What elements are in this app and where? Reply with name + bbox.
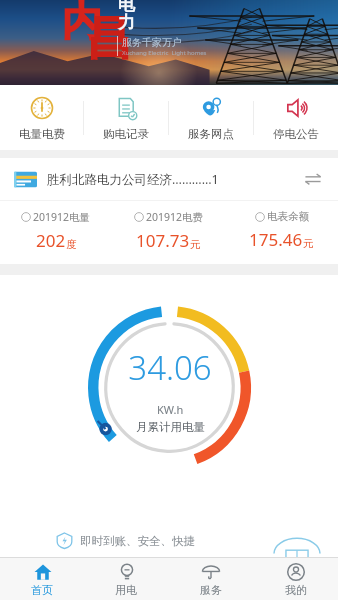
staticText: 内 bbox=[62, 0, 102, 46]
staticText: 胜利北路电力公司经济…………1 bbox=[47, 171, 219, 188]
staticText: 107.73 bbox=[136, 229, 190, 252]
staticText: 201912电量 bbox=[33, 210, 91, 224]
staticText: 175.46 bbox=[249, 228, 303, 251]
staticText: 我的 bbox=[285, 583, 307, 597]
staticText: KW.h bbox=[157, 402, 184, 417]
staticText: 34.06 bbox=[128, 345, 212, 390]
button[interactable]: 胜利北路电力公司经济…………1 bbox=[0, 158, 338, 200]
button[interactable]: 切换户号 bbox=[302, 168, 324, 190]
button[interactable]: 停电公告 bbox=[254, 85, 338, 150]
button[interactable]: 用电 bbox=[84, 558, 168, 600]
staticText: 停电公告 bbox=[273, 127, 319, 141]
staticText: 即时到账、安全、快捷 bbox=[80, 534, 195, 548]
staticText: 昌 bbox=[86, 10, 132, 68]
staticText: 元 bbox=[190, 238, 201, 251]
staticText: 电 力 bbox=[118, 0, 135, 33]
staticText: 月累计用电量 bbox=[136, 420, 205, 434]
button[interactable]: 电量电费 bbox=[0, 85, 83, 150]
staticText: 元 bbox=[303, 237, 314, 250]
button[interactable]: 服务 bbox=[168, 558, 253, 600]
staticText: 度 bbox=[66, 238, 77, 251]
button[interactable]: 购电记录 bbox=[84, 85, 168, 150]
button[interactable]: 即时到账、安全、快捷 bbox=[0, 524, 338, 557]
staticText: 电量电费 bbox=[19, 127, 65, 141]
staticText: 首页 bbox=[31, 583, 53, 597]
staticText: 服务千家万户 bbox=[122, 36, 182, 49]
staticText: 服务 bbox=[200, 583, 222, 597]
button[interactable]: 服务网点 bbox=[169, 85, 253, 150]
staticText: 用电 bbox=[115, 583, 137, 597]
staticText: 服务网点 bbox=[188, 127, 234, 141]
staticText: 电表余额 bbox=[267, 210, 309, 223]
staticText: Xuchang Electric Light homes bbox=[122, 49, 207, 57]
staticText: 201912电费 bbox=[146, 210, 204, 224]
staticText: 购电记录 bbox=[103, 127, 149, 141]
staticText: 202 bbox=[36, 229, 66, 252]
button[interactable]: 首页 bbox=[0, 558, 84, 600]
button[interactable]: 我的 bbox=[253, 558, 338, 600]
